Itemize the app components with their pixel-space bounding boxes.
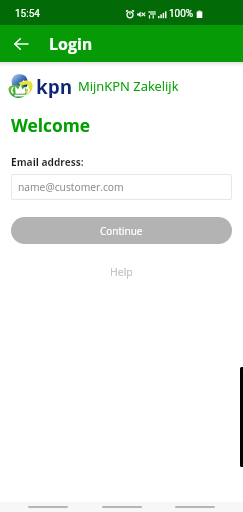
staticText: Continue [100, 224, 143, 238]
staticText: 15:54 [15, 8, 40, 20]
button[interactable]: Continue [11, 217, 232, 244]
button[interactable]: Navigation button [96, 502, 148, 512]
button[interactable]: Navigation button [22, 502, 74, 512]
button[interactable]: Help [102, 262, 141, 282]
staticText: name@customer.com [18, 180, 124, 194]
staticText: MijnKPN Zakelijk [78, 77, 179, 95]
button[interactable]: Navigation button [169, 502, 221, 512]
staticText: 100% [169, 8, 194, 20]
button[interactable]: name@customer.com [11, 174, 232, 200]
staticText: Login [49, 33, 93, 55]
button[interactable]: Back [8, 31, 34, 57]
staticText: Email address: [11, 155, 84, 169]
staticText: kpn [36, 74, 73, 98]
staticText: Welcome [11, 113, 91, 137]
